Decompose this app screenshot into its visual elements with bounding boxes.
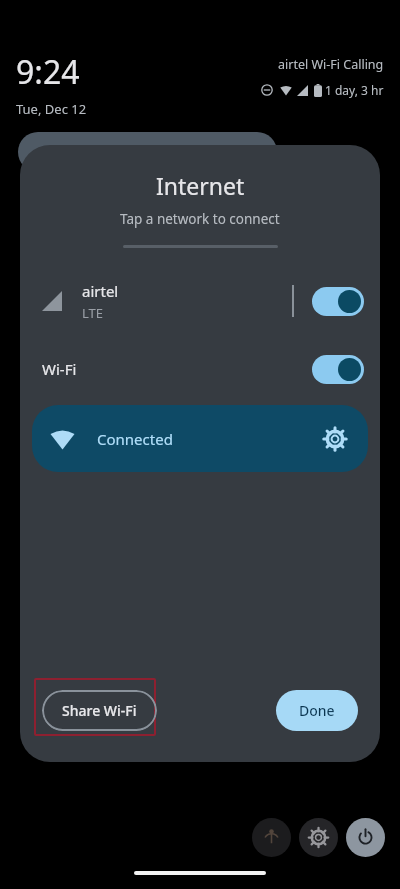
button[interactable]: Toggle: [312, 355, 364, 384]
staticText: airtel Wi-Fi Calling: [278, 56, 384, 73]
staticText: airtel: [82, 281, 119, 301]
button[interactable]: Wi-Fi: [20, 349, 380, 389]
button[interactable]: Share Wi-Fi: [42, 690, 157, 731]
button[interactable]: Connected: [32, 405, 368, 472]
staticText: 1 day, 3 hr: [325, 82, 384, 98]
staticText: Done: [299, 701, 335, 720]
button[interactable]: Network settings: [320, 424, 350, 454]
staticText: LTE: [82, 304, 104, 322]
staticText: Connected: [97, 429, 173, 449]
button[interactable]: Settings: [299, 818, 338, 857]
staticText: Tap a network to connect: [120, 210, 280, 228]
staticText: Internet: [156, 170, 245, 201]
button[interactable]: airtel: [20, 275, 380, 327]
button[interactable]: Lockdown: [252, 818, 291, 857]
staticText: Tue, Dec 12: [16, 100, 87, 118]
button[interactable]: Toggle: [312, 287, 364, 316]
button[interactable]: Power: [346, 818, 385, 857]
button[interactable]: Done: [276, 690, 358, 731]
staticText: 9:24: [16, 50, 80, 94]
staticText: Wi-Fi: [42, 359, 77, 379]
staticText: Share Wi-Fi: [62, 701, 137, 720]
